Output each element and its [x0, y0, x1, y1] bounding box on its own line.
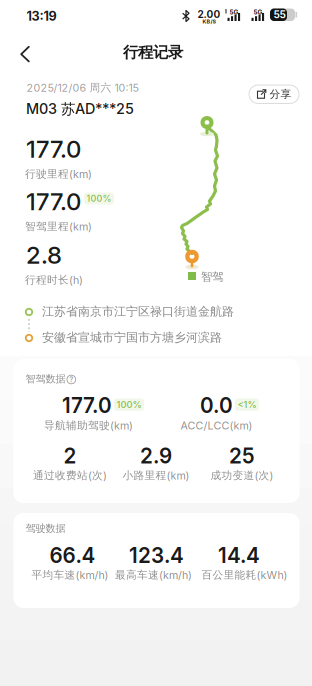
staticText: 14.4 [218, 543, 260, 568]
staticText: <1% [237, 399, 256, 410]
staticText: 导航辅助驾驶(km) [44, 419, 133, 432]
staticText: 123.4 [129, 543, 184, 568]
staticText: 分享 [269, 87, 291, 101]
staticText: 2.8 [26, 241, 62, 270]
staticText: 成功变道(次) [210, 469, 273, 482]
staticText: 2.9 [140, 443, 172, 468]
staticText: 0.0 [200, 393, 233, 418]
staticText: 智驾里程(km) [25, 220, 92, 233]
staticText: KB/S [202, 18, 215, 25]
staticText: 智驾数据 [25, 372, 65, 385]
staticText: 2.00 [197, 8, 220, 20]
staticText: 5G [253, 8, 262, 16]
staticText: 安徽省宣城市宁国市方塘乡河滨路 [42, 330, 222, 345]
staticText: 通过收费站(次) [33, 469, 107, 482]
staticText: 177.0 [62, 393, 112, 418]
staticText: 2025/12/06 周六 10:15 [26, 81, 138, 94]
button[interactable]: Back [0, 0, 44, 40]
staticText: 百公里能耗(kWh) [201, 568, 287, 582]
staticText: 177.0 [26, 187, 81, 216]
staticText: 智驾 [201, 269, 223, 284]
staticText: 177.0 [26, 135, 81, 164]
staticText: 100% [116, 399, 141, 410]
button[interactable]: 分享 [249, 85, 299, 103]
staticText: 25 [229, 443, 255, 468]
staticText: 行程记录 [123, 43, 183, 62]
staticText: 行程时长(h) [25, 273, 83, 287]
staticText: 13:19 [26, 8, 56, 24]
staticText: 江苏省南京市江宁区禄口街道金航路 [42, 304, 234, 319]
staticText: 66.4 [49, 543, 95, 568]
staticText: 驾驶数据 [25, 522, 65, 535]
staticText: 小路里程(km) [122, 469, 189, 482]
staticText: 5G [229, 8, 238, 16]
staticText: 55 [273, 9, 285, 21]
staticText: M03 苏AD***25 [26, 100, 134, 118]
button[interactable]: 智驾数据说明 [65, 373, 77, 385]
staticText: 行驶里程(km) [25, 167, 92, 181]
staticText: 100% [86, 193, 111, 204]
staticText: 最高车速(km/h) [115, 568, 192, 582]
staticText: ? [69, 375, 73, 384]
staticText: ACC/LCC(km) [180, 419, 252, 432]
staticText: 平均车速(km/h) [31, 568, 108, 582]
staticText: 2 [63, 443, 76, 468]
